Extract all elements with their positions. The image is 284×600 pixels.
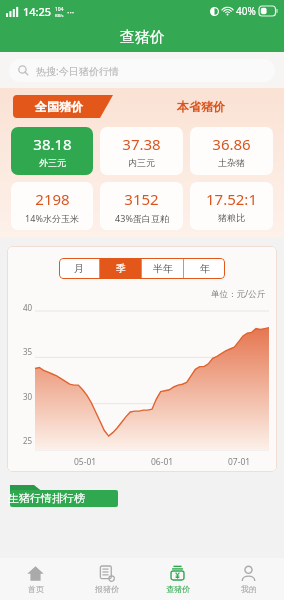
staticText: 35 xyxy=(23,346,33,357)
button[interactable]: 月 xyxy=(59,258,99,279)
staticText: 05-01 xyxy=(74,456,97,468)
staticText: 14:25 xyxy=(23,4,52,19)
button[interactable]: 2198 xyxy=(11,182,93,230)
staticText: KB/s xyxy=(55,13,64,18)
button[interactable]: 首页 xyxy=(0,558,71,600)
staticText: 年 xyxy=(200,262,210,275)
button[interactable]: 季 xyxy=(100,258,141,279)
staticText: 本省猪价 xyxy=(177,99,225,114)
staticText: 全国猪价 xyxy=(35,99,83,114)
staticText: 3152 xyxy=(124,189,159,209)
staticText: 查猪价 xyxy=(166,584,190,594)
staticText: 40% xyxy=(236,4,256,18)
staticText: 热搜:今日猪价行情 xyxy=(36,64,119,78)
button[interactable]: 全国猪价 xyxy=(13,95,113,118)
staticText: 首页 xyxy=(28,584,44,594)
staticText: 半年 xyxy=(153,262,173,275)
staticText: 内三元 xyxy=(128,157,155,168)
staticText: 外三元 xyxy=(39,157,66,168)
staticText: 我的 xyxy=(241,584,257,594)
staticText: 猪粮比 xyxy=(218,212,245,223)
button[interactable]: 生猪行情排行榜 xyxy=(8,491,85,505)
staticText: 06-01 xyxy=(151,456,174,468)
staticText: 土杂猪 xyxy=(218,157,245,168)
button[interactable]: 报猪价 xyxy=(71,558,142,600)
button[interactable]: 热搜:今日猪价行情 xyxy=(9,59,275,82)
button[interactable]: 年 xyxy=(184,258,225,279)
staticText: 104 xyxy=(55,6,64,13)
staticText: 40 xyxy=(23,302,33,313)
button[interactable]: 本省猪价 xyxy=(113,94,284,119)
staticText: 报猪价 xyxy=(95,584,119,594)
staticText: 单位：元/公斤 xyxy=(211,288,266,300)
staticText: 17.52:1 xyxy=(206,189,257,209)
button[interactable]: 查猪价 xyxy=(142,558,213,600)
staticText: 43%蛋白豆粕 xyxy=(115,212,169,224)
button[interactable]: 3152 xyxy=(100,182,183,230)
staticText: 月 xyxy=(74,262,84,275)
staticText: 2198 xyxy=(35,189,70,209)
staticText: 25 xyxy=(23,435,33,446)
button[interactable]: 我的 xyxy=(213,558,284,600)
button[interactable]: 38.18 xyxy=(11,127,93,175)
staticText: 38.18 xyxy=(33,134,72,154)
staticText: 季 xyxy=(116,262,126,275)
button[interactable]: 36.86 xyxy=(190,127,273,175)
staticText: 36.86 xyxy=(212,134,251,154)
button[interactable]: 37.38 xyxy=(100,127,183,175)
button[interactable]: 17.52:1 xyxy=(190,182,273,230)
staticText: 查猪价 xyxy=(120,28,165,47)
button[interactable]: 半年 xyxy=(142,258,183,279)
staticText: 14%水分玉米 xyxy=(25,212,79,224)
staticText: 37.38 xyxy=(122,134,161,154)
staticText: 30 xyxy=(23,391,33,402)
staticText: ··· xyxy=(67,6,75,18)
staticText: 07-01 xyxy=(228,456,251,468)
